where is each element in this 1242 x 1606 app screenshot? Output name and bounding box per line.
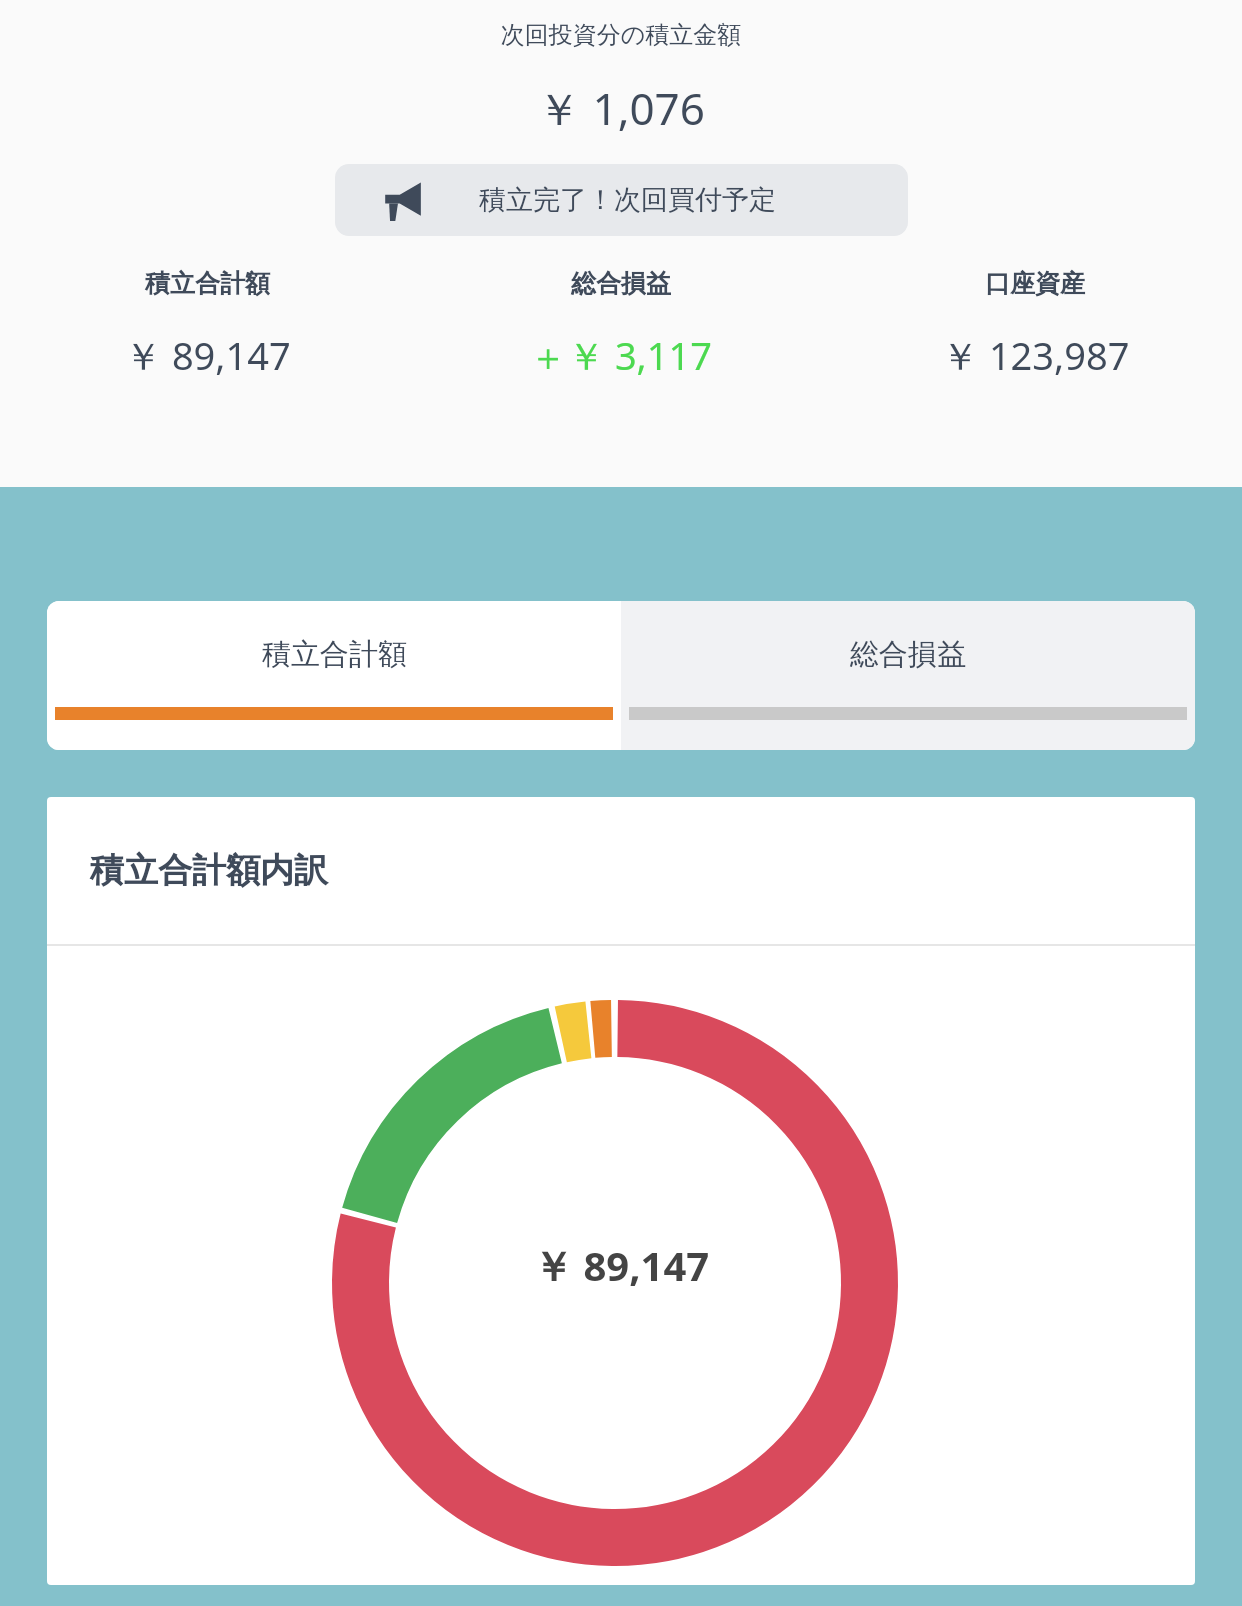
staticText: 積立完了！次回買付予定 bbox=[479, 183, 776, 217]
staticText: ￥ 89,147 bbox=[124, 329, 291, 381]
staticText: ＋￥ 3,117 bbox=[529, 329, 713, 381]
button[interactable]: 総合損益 bbox=[621, 601, 1195, 750]
button[interactable]: お知らせ bbox=[335, 164, 908, 236]
button[interactable]: 口座資産 bbox=[828, 268, 1242, 381]
staticText: 次回投資分の積立金額 bbox=[0, 20, 1242, 50]
other: お知らせ bbox=[383, 178, 427, 222]
staticText: 積立合計額 bbox=[145, 268, 270, 299]
staticText: 口座資産 bbox=[985, 268, 1085, 299]
staticText: ￥ 123,987 bbox=[941, 329, 1130, 381]
button[interactable]: 積立合計額 bbox=[47, 601, 621, 750]
staticText: ￥ 89,147 bbox=[533, 1238, 710, 1293]
button[interactable]: 総合損益 bbox=[414, 268, 828, 381]
staticText: 総合損益 bbox=[850, 636, 966, 673]
button[interactable]: 積立合計額 bbox=[0, 268, 414, 381]
staticText: 総合損益 bbox=[571, 268, 671, 299]
staticText: 積立合計額内訳 bbox=[90, 849, 328, 892]
staticText: 積立合計額 bbox=[262, 636, 407, 673]
staticText: ￥ 1,076 bbox=[0, 78, 1242, 138]
